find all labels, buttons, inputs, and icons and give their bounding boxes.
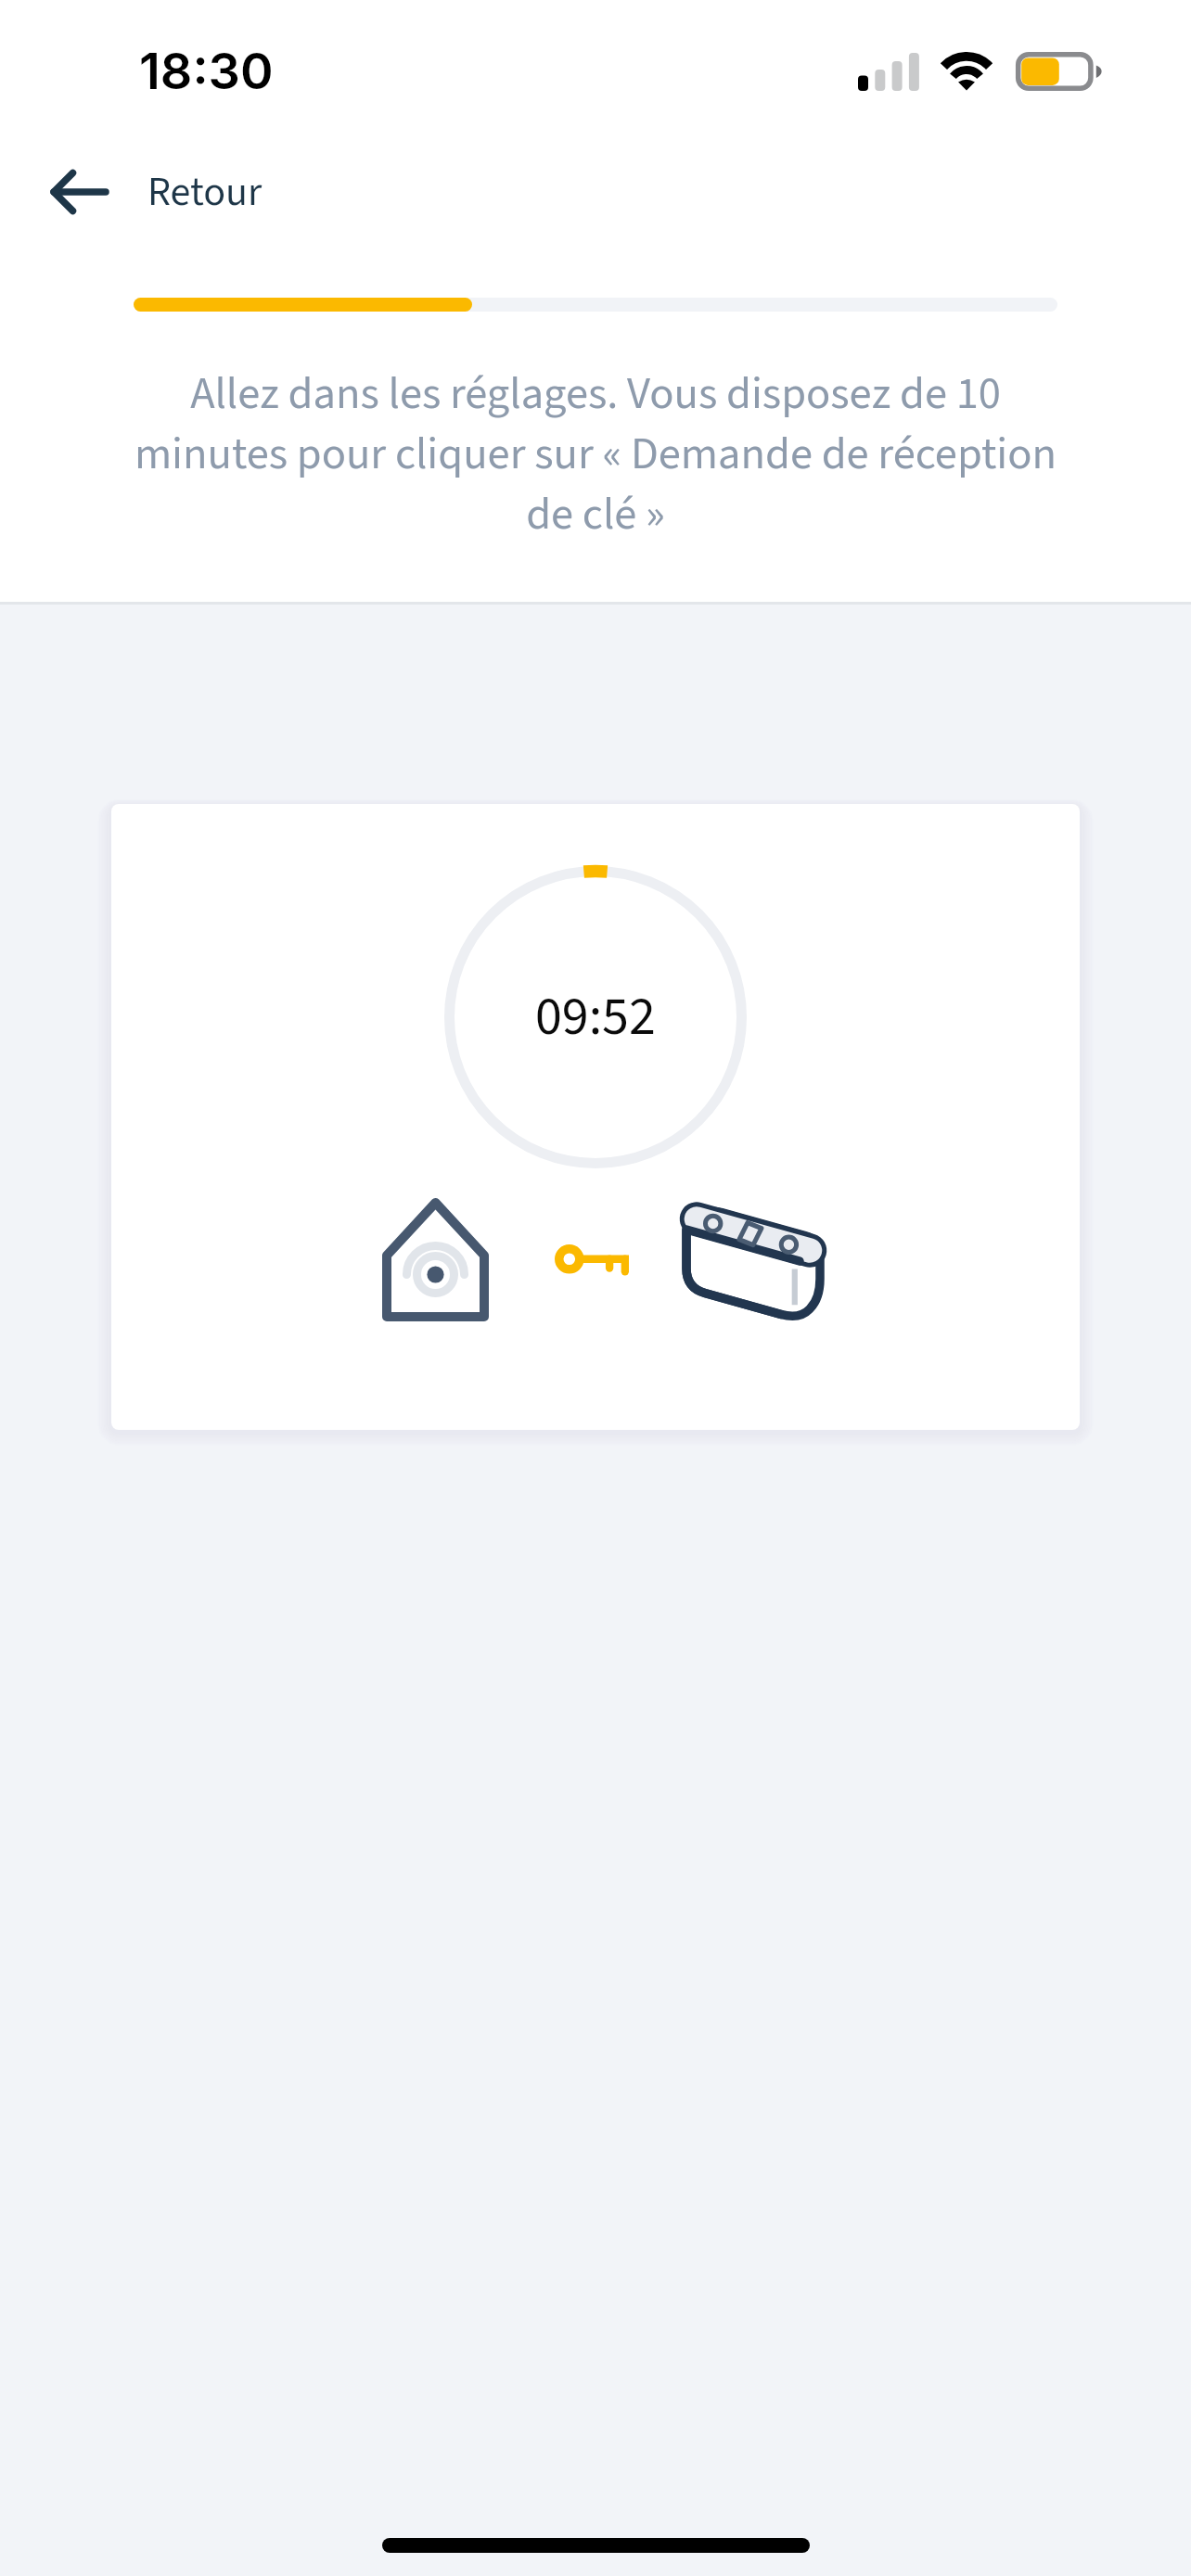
staticText: 09:52: [535, 979, 656, 1056]
button[interactable]: Retour: [0, 141, 1191, 243]
staticText: Allez dans les réglages. Vous disposez d…: [122, 362, 1069, 546]
staticText: Retour: [147, 163, 263, 222]
staticText: 18:30: [139, 41, 274, 101]
other: Retour: [50, 166, 109, 218]
